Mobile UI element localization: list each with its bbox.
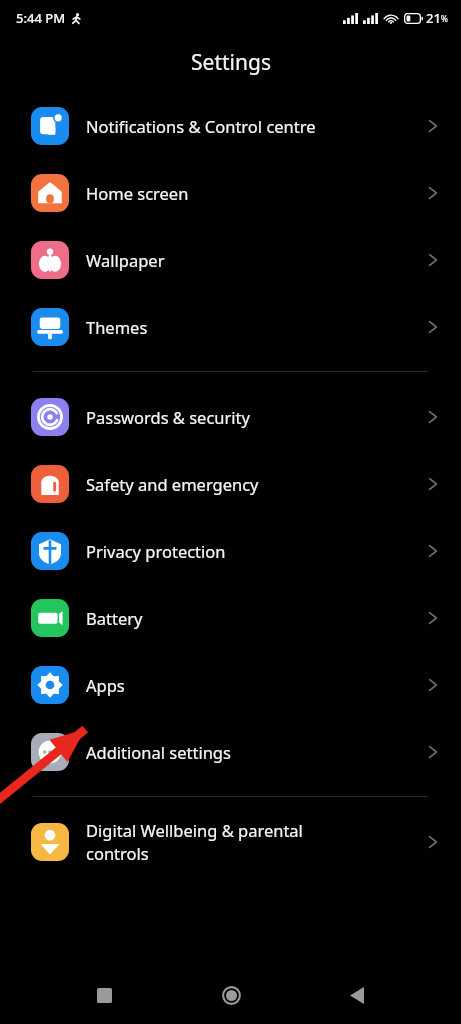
button[interactable]: Themes	[0, 293, 461, 360]
staticText: Settings	[191, 48, 271, 77]
button[interactable]: Privacy protection	[0, 517, 461, 584]
staticText: Privacy protection	[86, 540, 427, 562]
button[interactable]: Additional settings	[0, 718, 461, 785]
staticText: Safety and emergency	[86, 473, 427, 495]
staticText: Apps	[86, 674, 427, 696]
staticText: Wallpaper	[86, 249, 427, 271]
staticText: Passwords & security	[86, 406, 427, 428]
staticText: Themes	[86, 316, 427, 338]
button[interactable]: Notifications & Control centre	[0, 92, 461, 159]
button[interactable]: Digital Wellbeing & parental controls	[0, 808, 461, 875]
staticText: 21	[426, 9, 441, 27]
staticText: Home screen	[86, 182, 427, 204]
button[interactable]: Home	[209, 973, 253, 1017]
button[interactable]: Safety and emergency	[0, 450, 461, 517]
staticText: 5:44 PM	[16, 9, 66, 27]
button[interactable]: Passwords & security	[0, 383, 461, 450]
staticText: Notifications & Control centre	[86, 115, 427, 137]
button[interactable]: Apps	[0, 651, 461, 718]
button[interactable]: Home screen	[0, 159, 461, 226]
staticText: Additional settings	[86, 741, 427, 763]
staticText: %	[441, 13, 448, 24]
button[interactable]: Back	[335, 973, 379, 1017]
button[interactable]: Wallpaper	[0, 226, 461, 293]
staticText: Digital Wellbeing & parental controls	[86, 819, 427, 865]
button[interactable]: Recent apps	[82, 973, 126, 1017]
staticText: Battery	[86, 607, 427, 629]
button[interactable]: Battery	[0, 584, 461, 651]
